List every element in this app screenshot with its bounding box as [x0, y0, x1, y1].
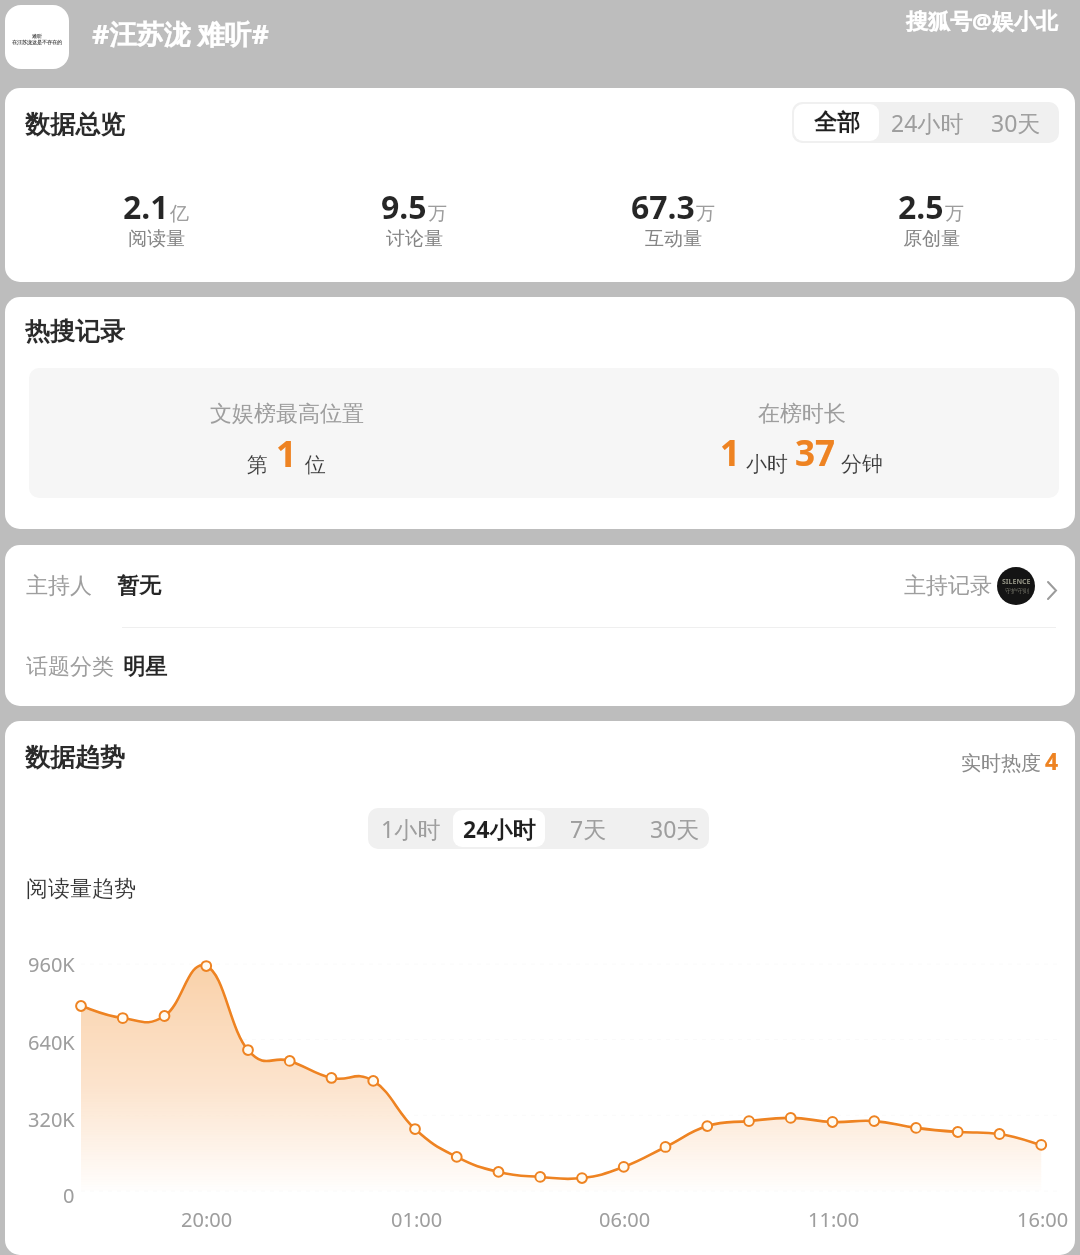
- staticText: 24小时: [463, 813, 536, 844]
- staticText: 30天: [991, 107, 1041, 138]
- staticText: 960K: [28, 951, 75, 978]
- staticText: 第: [247, 452, 268, 478]
- staticText: 暂无: [117, 572, 161, 600]
- button[interactable]: 主持人: [5, 545, 1075, 627]
- staticText: 06:00: [599, 1206, 651, 1233]
- staticText: 搜狐号@娱小北: [906, 5, 1058, 35]
- staticText: 小时: [746, 451, 788, 477]
- staticText: 67.3: [631, 185, 695, 229]
- staticText: 位: [305, 452, 326, 478]
- staticText: 万: [428, 202, 447, 226]
- staticText: 4: [1045, 745, 1059, 776]
- staticText: 0: [63, 1182, 75, 1209]
- button[interactable]: 30天: [640, 808, 709, 849]
- staticText: 明星: [123, 653, 167, 681]
- staticText: 在汪苏泷这是不存在的: [12, 39, 62, 45]
- staticText: 主持记录: [904, 572, 992, 600]
- button[interactable]: 24小时: [881, 102, 973, 143]
- button[interactable]: 话题分类: [5, 628, 1075, 706]
- staticText: 数据总览: [25, 109, 125, 140]
- staticText: 阅读量趋势: [26, 875, 136, 903]
- staticText: 守护守则: [1005, 587, 1029, 595]
- staticText: 实时热度: [961, 751, 1041, 776]
- staticText: 分钟: [841, 451, 883, 477]
- staticText: 1小时: [381, 813, 441, 844]
- staticText: 话题分类: [26, 653, 114, 681]
- button[interactable]: 全部: [794, 104, 879, 141]
- staticText: 320K: [28, 1106, 75, 1133]
- button[interactable]: 30天: [973, 102, 1059, 143]
- staticText: 11:00: [808, 1206, 860, 1233]
- staticText: SILENCE: [1002, 577, 1031, 587]
- staticText: 640K: [28, 1029, 75, 1056]
- staticText: 7天: [570, 813, 607, 844]
- staticText: 在榜时长: [758, 400, 846, 428]
- staticText: 16:00: [1017, 1206, 1069, 1233]
- other: 主持记录: [1046, 572, 1059, 600]
- staticText: 全部: [814, 108, 860, 137]
- staticText: 37: [795, 429, 836, 477]
- staticText: 20:00: [181, 1206, 233, 1233]
- staticText: 1: [720, 429, 741, 477]
- button[interactable]: 话题封面: [5, 5, 69, 69]
- staticText: 30天: [650, 813, 700, 844]
- staticText: 亿: [170, 202, 189, 226]
- staticText: 讨论量: [386, 227, 443, 251]
- staticText: 1: [276, 429, 297, 478]
- staticText: 9.5: [381, 185, 427, 229]
- staticText: 2.1: [123, 185, 169, 229]
- staticText: 24小时: [891, 107, 964, 138]
- staticText: 2.5: [898, 185, 944, 229]
- staticText: 难听: [32, 33, 42, 39]
- staticText: 万: [945, 202, 964, 226]
- staticText: 文娱榜最高位置: [210, 400, 364, 428]
- staticText: 原创量: [903, 227, 960, 251]
- staticText: 热搜记录: [25, 316, 125, 347]
- staticText: 主持人: [26, 572, 92, 600]
- staticText: 互动量: [645, 227, 702, 251]
- button[interactable]: 1小时: [368, 808, 453, 849]
- staticText: 01:00: [391, 1206, 443, 1233]
- staticText: 万: [696, 202, 715, 226]
- staticText: #汪苏泷 难听#: [92, 15, 269, 52]
- staticText: 数据趋势: [25, 742, 125, 773]
- button[interactable]: 24小时: [453, 810, 545, 847]
- staticText: 阅读量: [128, 227, 185, 251]
- button[interactable]: 7天: [548, 808, 628, 849]
